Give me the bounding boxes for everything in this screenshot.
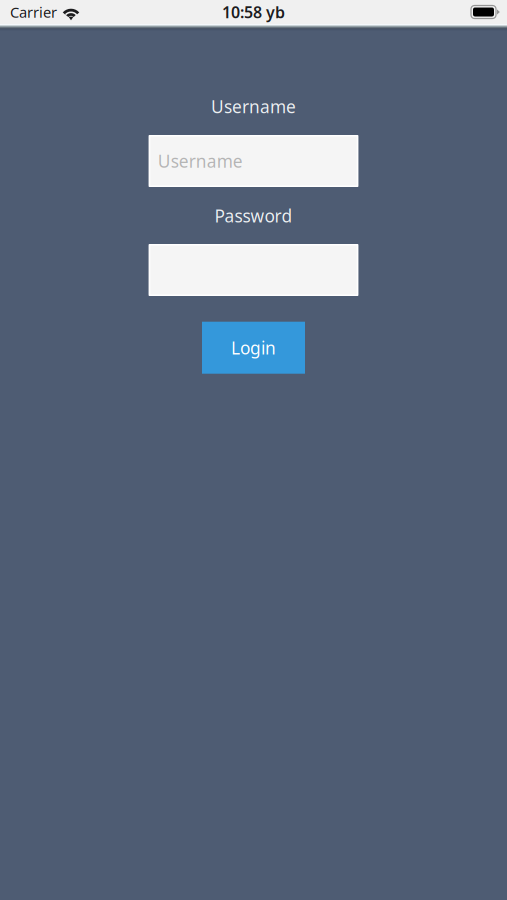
staticText: Password [214,204,292,227]
button[interactable]: Username [149,135,358,187]
button[interactable]: Login [202,322,305,374]
staticText: Username [211,95,296,118]
staticText: Username [158,149,243,172]
staticText: 10:58 yb [222,1,285,23]
staticText: Login [231,336,276,359]
staticText: Carrier [10,2,57,22]
